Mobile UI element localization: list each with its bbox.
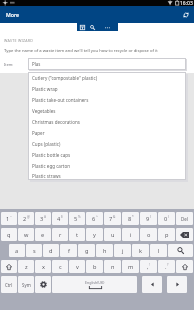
button[interactable]: Search xyxy=(168,244,193,257)
button[interactable]: 2 xyxy=(18,212,34,225)
staticText: y xyxy=(93,231,96,239)
staticText: ~ xyxy=(10,215,12,219)
staticText: Sym xyxy=(22,282,31,288)
staticText: f xyxy=(68,247,70,255)
button[interactable]: Cutlery ("compostable" plastic) xyxy=(28,72,186,83)
staticText: ! xyxy=(149,263,150,267)
button[interactable]: r xyxy=(52,228,68,241)
button[interactable]: k xyxy=(132,244,149,257)
button[interactable]: Plastic wrap xyxy=(28,83,186,94)
button[interactable]: o xyxy=(140,228,157,241)
staticText: l xyxy=(158,247,160,255)
staticText: w xyxy=(24,231,29,239)
button[interactable]: Shift xyxy=(1,260,17,273)
staticText: d xyxy=(49,247,53,255)
button[interactable]: Cups (plastic) xyxy=(28,138,186,149)
staticText: , xyxy=(147,263,149,271)
staticText: b xyxy=(93,263,97,271)
button[interactable]: y xyxy=(86,228,103,241)
staticText: Vegetables xyxy=(32,108,56,114)
button[interactable]: Input settings xyxy=(35,276,51,293)
button[interactable]: d xyxy=(43,244,59,257)
staticText: More xyxy=(6,11,19,18)
button[interactable]: z xyxy=(18,260,34,273)
button[interactable]: Sym xyxy=(18,276,34,293)
button[interactable]: Plastic straws xyxy=(28,171,186,180)
button[interactable]: q xyxy=(1,228,17,241)
staticText: 2 xyxy=(23,215,27,223)
button[interactable]: x xyxy=(35,260,51,273)
staticText: 9 xyxy=(146,215,150,223)
staticText: 0 xyxy=(164,215,168,223)
staticText: ? xyxy=(167,263,169,267)
staticText: 1 xyxy=(6,215,10,223)
button[interactable]: v xyxy=(69,260,85,273)
button[interactable]: f xyxy=(60,244,77,257)
button[interactable]: 0 xyxy=(158,212,175,225)
button[interactable]: u xyxy=(104,228,121,241)
button[interactable]: 9 xyxy=(140,212,157,225)
button[interactable]: English(UK) xyxy=(52,276,137,293)
button[interactable]: i xyxy=(122,228,139,241)
staticText: Ctrl xyxy=(5,282,13,288)
button[interactable]: Backspace xyxy=(176,228,193,241)
button[interactable]: Search xyxy=(88,23,96,31)
button[interactable]: Paper xyxy=(28,127,186,138)
button[interactable]: 4 xyxy=(52,212,68,225)
button[interactable]: 1 xyxy=(1,212,17,225)
staticText: Del xyxy=(181,216,188,222)
staticText: Christmas decorations xyxy=(32,119,80,125)
staticText: v xyxy=(76,263,79,271)
button[interactable]: Vegetables xyxy=(28,105,186,116)
staticText: c xyxy=(59,263,62,271)
staticText: 4 xyxy=(57,215,61,223)
staticText: Plastic egg carton xyxy=(32,163,70,169)
staticText: h xyxy=(103,247,107,255)
button[interactable]: , xyxy=(140,260,157,273)
button[interactable]: c xyxy=(52,260,68,273)
staticText: Plastic bottle caps xyxy=(32,152,71,158)
staticText: ( xyxy=(150,215,151,219)
button[interactable]: 6 xyxy=(86,212,103,225)
staticText: & xyxy=(113,215,116,219)
button[interactable]: Plastic take-out containers xyxy=(28,94,186,105)
button[interactable]: 5 xyxy=(69,212,85,225)
button[interactable]: . xyxy=(158,260,175,273)
staticText: k xyxy=(139,247,142,255)
button[interactable]: a xyxy=(9,244,25,257)
button[interactable]: More options xyxy=(103,23,111,31)
staticText: * xyxy=(132,215,134,219)
button[interactable]: Plastic bottle caps xyxy=(28,149,186,160)
button[interactable]: n xyxy=(104,260,121,273)
button[interactable]: l xyxy=(150,244,167,257)
button[interactable]: p xyxy=(158,228,175,241)
button[interactable]: Move right xyxy=(167,276,187,293)
button[interactable]: 7 xyxy=(104,212,121,225)
button[interactable]: s xyxy=(26,244,42,257)
button[interactable]: 3 xyxy=(35,212,51,225)
staticText: % xyxy=(78,215,81,219)
staticText: m xyxy=(128,263,134,271)
staticText: i xyxy=(130,231,132,239)
button[interactable]: h xyxy=(96,244,113,257)
button[interactable]: Ctrl xyxy=(1,276,17,293)
staticText: 16:03 xyxy=(180,0,193,6)
button[interactable]: j xyxy=(114,244,131,257)
button[interactable]: Plas xyxy=(28,58,186,70)
button[interactable]: m xyxy=(122,260,139,273)
button[interactable]: g xyxy=(78,244,95,257)
button[interactable]: t xyxy=(69,228,85,241)
button[interactable]: Refresh xyxy=(180,9,191,20)
button[interactable]: 8 xyxy=(122,212,139,225)
button[interactable]: Christmas decorations xyxy=(28,116,186,127)
button[interactable]: b xyxy=(86,260,103,273)
button[interactable]: Plastic egg carton xyxy=(28,160,186,171)
button[interactable]: Del xyxy=(176,212,193,225)
staticText: e xyxy=(41,231,45,239)
staticText: j xyxy=(122,247,124,255)
button[interactable]: Grid view xyxy=(78,23,86,31)
button[interactable]: w xyxy=(18,228,34,241)
button[interactable]: e xyxy=(35,228,51,241)
button[interactable]: Shift xyxy=(176,260,193,273)
button[interactable]: Move left xyxy=(142,276,162,293)
